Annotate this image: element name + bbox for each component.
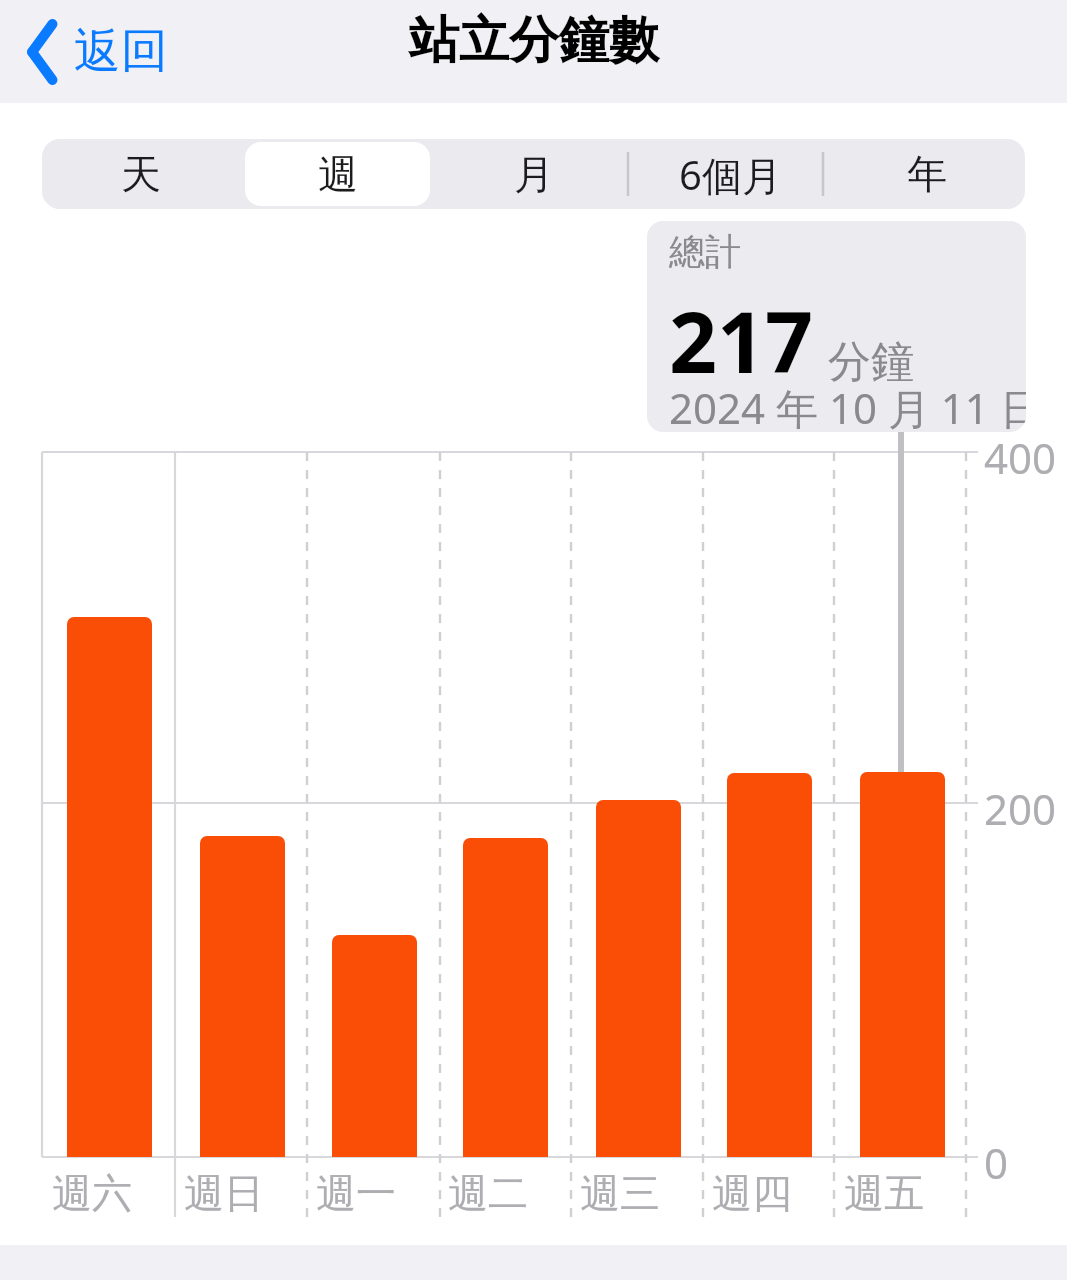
staticText: 週四: [712, 1168, 792, 1218]
staticText: 週一: [316, 1168, 396, 1218]
button[interactable]: 總計: [647, 221, 1026, 432]
staticText: 天: [121, 149, 161, 199]
button[interactable]: 月: [441, 142, 626, 206]
staticText: 年: [907, 149, 947, 199]
button[interactable]: 6個月: [638, 142, 823, 206]
staticText: 200: [984, 780, 1057, 837]
staticText: 總計: [669, 229, 741, 274]
staticText: 週二: [448, 1168, 528, 1218]
staticText: 週日: [184, 1168, 264, 1218]
staticText: 月: [514, 149, 554, 199]
button[interactable]: 週: [245, 142, 430, 206]
staticText: 週: [318, 149, 358, 199]
staticText: 週六: [52, 1168, 132, 1218]
staticText: 返回: [74, 22, 168, 81]
staticText: 週五: [844, 1168, 924, 1218]
button[interactable]: 年: [834, 142, 1019, 206]
staticText: 0: [984, 1134, 1009, 1191]
staticText: 400: [984, 429, 1057, 486]
button[interactable]: 返回: [20, 16, 176, 87]
staticText: 分鐘: [828, 335, 914, 389]
staticText: 6個月: [679, 147, 782, 202]
staticText: 2024 年 10 月 11 日: [669, 379, 1026, 432]
button[interactable]: 天: [48, 142, 233, 206]
staticText: 217: [669, 283, 814, 397]
staticText: 週三: [580, 1168, 660, 1218]
staticText: 站立分鐘數: [409, 9, 659, 72]
